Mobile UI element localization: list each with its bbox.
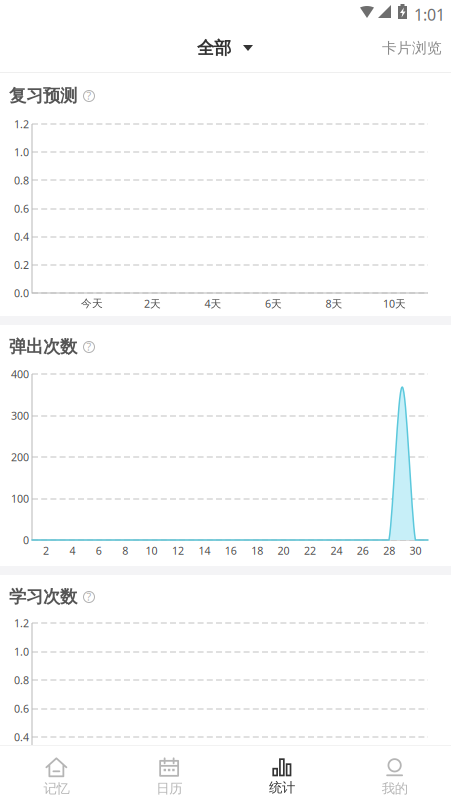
staticText: 0.4 [14,230,29,244]
button[interactable]: 我的 [338,752,451,802]
staticText: 1.2 [14,117,29,131]
staticText: 1.2 [14,616,29,630]
staticText: 28 [383,543,395,558]
staticText: 6 [96,543,102,558]
staticText: 200 [11,450,29,464]
staticText: 20 [278,543,290,558]
staticText: 4 [69,543,75,558]
button[interactable]: 记忆 [0,752,113,802]
staticText: 0.4 [14,730,29,744]
button[interactable]: 日历 [113,752,226,802]
staticText: 1:01 [414,4,445,25]
staticText: 6天 [265,296,282,311]
button[interactable]: 说明 [80,87,98,105]
staticText: ? [86,339,91,354]
staticText: 26 [357,543,369,558]
staticText: 400 [11,367,29,381]
staticText: ? [86,589,91,604]
staticText: 复习预测 [9,85,77,106]
staticText: 2 [43,543,49,558]
staticText: 300 [11,408,29,423]
staticText: 16 [225,543,237,558]
button[interactable]: 统计 [225,752,338,802]
staticText: 记忆 [43,780,69,797]
staticText: 14 [198,543,210,558]
staticText: 18 [251,543,263,558]
staticText: 统计 [269,779,295,796]
staticText: 4天 [204,296,221,311]
staticText: 0.6 [14,201,29,216]
staticText: 0 [23,533,29,547]
staticText: 10 [146,543,158,558]
staticText: 卡片浏览 [382,39,442,57]
staticText: 22 [304,543,316,558]
staticText: ? [86,88,91,103]
staticText: 12 [172,543,184,558]
staticText: 日历 [156,780,182,797]
staticText: 8天 [325,296,342,311]
staticText: 0.8 [14,673,29,687]
staticText: 100 [11,491,29,506]
button[interactable]: 全部 [189,28,253,68]
button[interactable]: 说明 [80,588,98,606]
staticText: 2天 [144,296,161,311]
staticText: 1.0 [14,644,29,659]
staticText: 学习次数 [9,586,77,607]
button[interactable]: 卡片浏览 [382,28,451,68]
staticText: 我的 [382,780,408,797]
staticText: 1.0 [14,145,29,159]
staticText: 今天 [81,297,103,310]
staticText: 30 [410,543,422,558]
staticText: 弹出次数 [9,336,77,357]
staticText: 全部 [197,37,231,59]
staticText: 0.2 [14,258,29,272]
staticText: 0.0 [14,286,29,300]
staticText: 10天 [383,296,406,311]
staticText: 8 [122,543,128,558]
staticText: 24 [330,543,342,558]
button[interactable]: 说明 [80,338,98,356]
staticText: 0.8 [14,173,29,187]
staticText: 0.6 [14,701,29,716]
